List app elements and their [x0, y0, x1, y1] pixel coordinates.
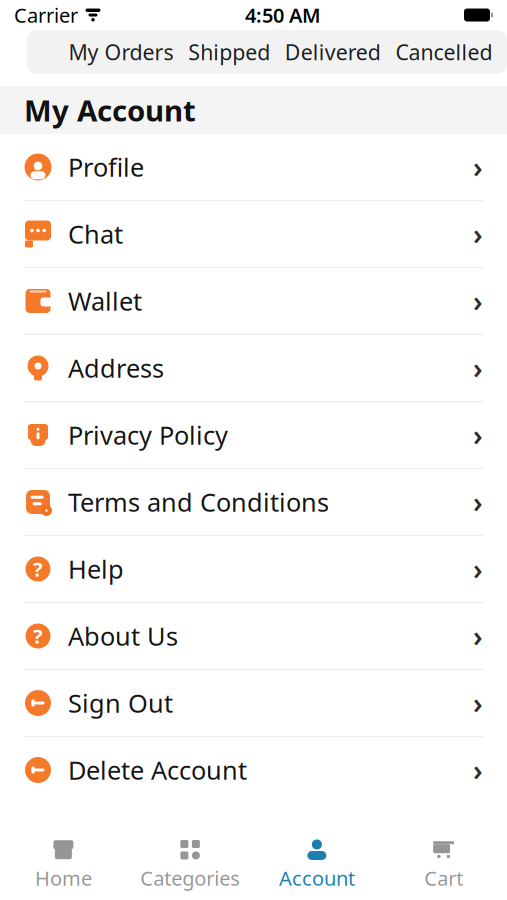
button[interactable]: Chat [0, 201, 507, 267]
button[interactable]: Delivered [285, 38, 381, 66]
button[interactable]: My Orders [69, 38, 174, 66]
button[interactable]: Account [253, 835, 380, 895]
staticText: Carrier [14, 2, 78, 28]
staticText: Help [68, 552, 124, 586]
staticText: Profile [68, 150, 144, 184]
staticText: › [473, 751, 483, 789]
staticText: Cancelled [395, 38, 492, 66]
button[interactable]: Sign Out [0, 670, 507, 736]
staticText: Shipped [188, 38, 270, 66]
staticText: › [473, 483, 483, 521]
staticText: › [473, 550, 483, 588]
button[interactable]: Delete Account [0, 737, 507, 803]
staticText: Home [35, 865, 92, 891]
button[interactable]: Cart [380, 835, 507, 895]
button[interactable]: Terms and Conditions [0, 469, 507, 535]
staticText: Terms and Conditions [68, 485, 329, 519]
staticText: Cart [424, 865, 463, 891]
staticText: › [473, 349, 483, 387]
staticText: Delivered [285, 38, 381, 66]
staticText: › [473, 617, 483, 655]
staticText: Privacy Policy [68, 418, 228, 452]
button[interactable]: ? [0, 536, 507, 602]
staticText: Account [279, 865, 355, 891]
staticText: Chat [68, 217, 123, 251]
staticText: 4:50 AM [245, 2, 321, 28]
staticText: › [473, 282, 483, 320]
staticText: My Account [24, 90, 196, 129]
staticText: About Us [68, 619, 178, 653]
button[interactable]: Address [0, 335, 507, 401]
staticText: ? [33, 623, 43, 649]
staticText: › [473, 148, 483, 186]
button[interactable]: Privacy Policy [0, 402, 507, 468]
staticText: Wallet [68, 284, 142, 318]
staticText: Delete Account [68, 753, 247, 787]
button[interactable]: ? [0, 603, 507, 669]
staticText: › [473, 684, 483, 722]
staticText: › [473, 215, 483, 253]
button[interactable]: Wallet [0, 268, 507, 334]
button[interactable]: Home [0, 835, 127, 895]
staticText: › [473, 416, 483, 454]
staticText: ? [33, 556, 43, 582]
staticText: Address [68, 351, 164, 385]
button[interactable]: Profile [0, 134, 507, 200]
button[interactable]: Cancelled [395, 38, 492, 66]
staticText: My Orders [69, 38, 174, 66]
staticText: Categories [140, 865, 240, 891]
button[interactable]: Shipped [188, 38, 270, 66]
button[interactable]: Categories [127, 835, 254, 895]
staticText: Sign Out [68, 686, 173, 720]
